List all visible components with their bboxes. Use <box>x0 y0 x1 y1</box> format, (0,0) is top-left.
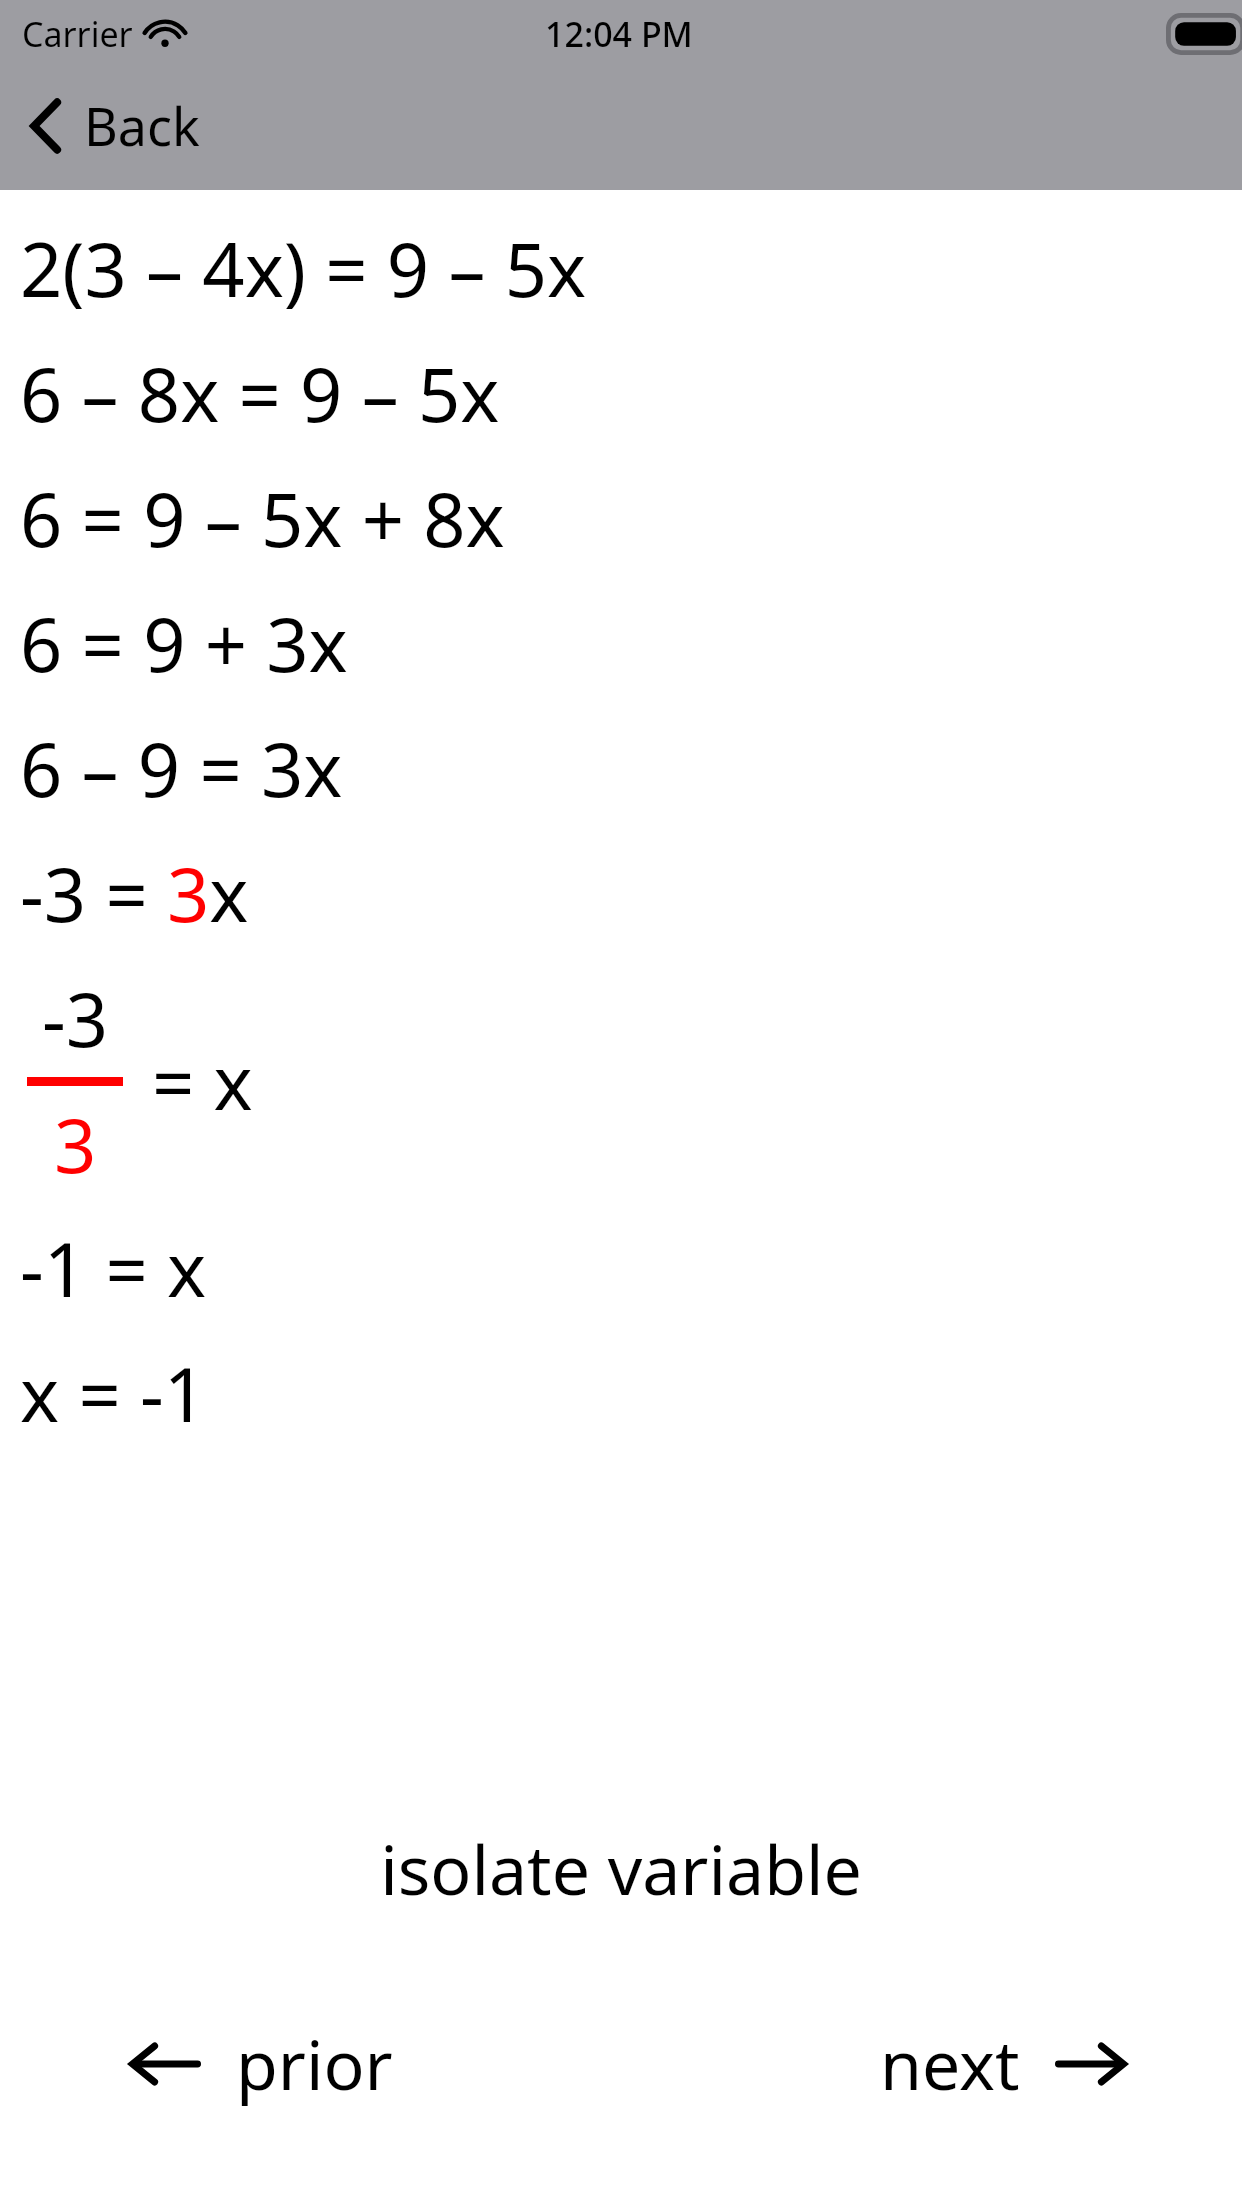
staticText: 12:04 PM <box>545 11 693 57</box>
staticText: 6 = 9 + 3x <box>20 593 348 694</box>
staticText: 2(3 – 4x) = 9 – 5x <box>20 218 587 319</box>
staticText: x = -1 <box>20 1343 207 1444</box>
other: Previous step <box>128 2034 202 2094</box>
staticText: next <box>880 2017 1020 2110</box>
button[interactable]: Previous step <box>110 2003 411 2124</box>
button[interactable]: next <box>862 2003 1146 2124</box>
staticText: prior <box>236 2017 393 2110</box>
staticText: 6 – 9 = 3x <box>20 718 343 819</box>
other: Next step <box>1054 2034 1128 2094</box>
staticText: Carrier <box>22 11 133 57</box>
staticText: = x <box>152 1031 253 1132</box>
staticText: -3 = 3x <box>20 843 249 944</box>
staticText: 6 – 8x = 9 – 5x <box>20 343 500 444</box>
staticText: Back <box>84 90 200 161</box>
staticText: 6 = 9 – 5x + 8x <box>20 468 505 569</box>
button[interactable]: Back <box>0 80 226 171</box>
staticText: -3 <box>42 968 109 1069</box>
staticText: 3 <box>54 1094 97 1195</box>
staticText: isolate variable <box>0 1822 1242 1915</box>
staticText: -1 = x <box>20 1218 207 1319</box>
